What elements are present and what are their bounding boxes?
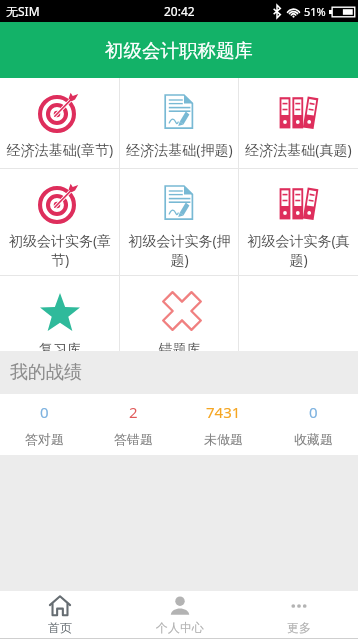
- staticText: 答对题: [25, 431, 64, 447]
- staticText: 个人中心: [156, 620, 204, 635]
- button[interactable]: 经济法基础(押题): [120, 78, 239, 168]
- staticText: 未做题: [204, 431, 243, 447]
- button[interactable]: 初级会计实务(押题): [120, 169, 239, 275]
- staticText: 0: [309, 402, 318, 422]
- button[interactable]: 错题库: [120, 276, 239, 351]
- staticText: 首页: [48, 620, 72, 635]
- staticText: 更多: [287, 620, 311, 635]
- staticText: 复习库: [3, 341, 117, 351]
- button[interactable]: 0: [268, 394, 358, 455]
- staticText: 初级会计实务(押题): [123, 231, 236, 269]
- staticText: 初级会计实务(章节): [3, 231, 117, 269]
- staticText: 经济法基础(章节): [3, 140, 117, 159]
- button[interactable]: 初级会计实务(真题): [239, 169, 358, 275]
- staticText: 51%: [304, 4, 326, 19]
- staticText: 2: [129, 402, 138, 422]
- staticText: 我的战绩: [10, 361, 82, 384]
- staticText: 经济法基础(真题): [242, 140, 355, 159]
- button[interactable]: 初级会计实务(章节): [0, 169, 120, 275]
- staticText: 初级会计实务(真题): [242, 231, 355, 269]
- staticText: 7431: [206, 402, 241, 422]
- button[interactable]: 更多: [239, 591, 358, 638]
- button[interactable]: 经济法基础(章节): [0, 78, 120, 168]
- button[interactable]: 0: [0, 394, 89, 455]
- staticText: 20:42: [164, 3, 195, 19]
- staticText: 错题库: [123, 341, 236, 351]
- button[interactable]: 复习库: [0, 276, 120, 351]
- staticText: 经济法基础(押题): [123, 140, 236, 159]
- button[interactable]: 首页: [0, 591, 120, 638]
- button[interactable]: 个人中心: [120, 591, 239, 638]
- button[interactable]: 2: [89, 394, 178, 455]
- button[interactable]: 7431: [178, 394, 268, 455]
- staticText: 答错题: [114, 431, 153, 447]
- staticText: 0: [40, 402, 49, 422]
- staticText: 收藏题: [294, 431, 333, 447]
- staticText: 无SIM: [6, 3, 40, 19]
- staticText: 初级会计职称题库: [105, 39, 253, 62]
- button[interactable]: 经济法基础(真题): [239, 78, 358, 168]
